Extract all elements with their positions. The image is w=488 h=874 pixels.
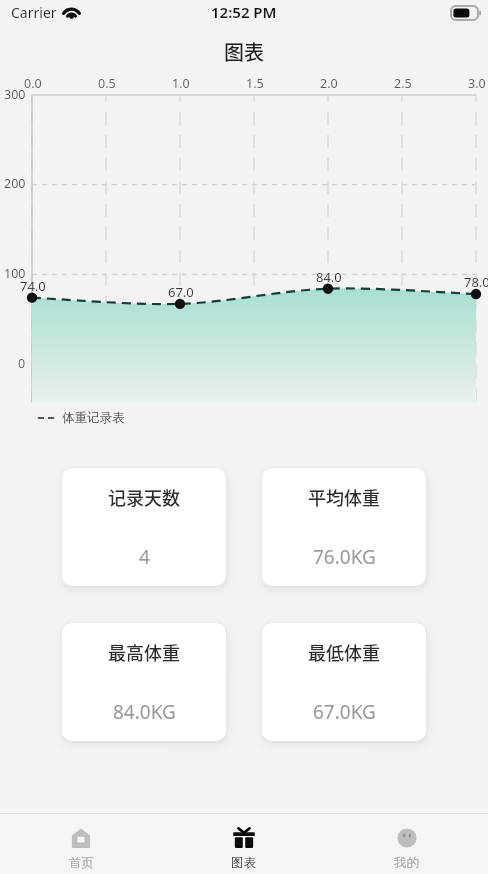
button[interactable]: 记录天数 (62, 468, 226, 586)
staticText: 67.0KG (313, 699, 376, 725)
button[interactable]: 最低体重 (262, 623, 426, 741)
staticText: 最低体重 (308, 639, 380, 665)
staticText: Carrier (11, 3, 57, 22)
button[interactable]: 平均体重 (262, 468, 426, 586)
staticText: 平均体重 (308, 484, 380, 510)
button[interactable]: 我的 (325, 814, 488, 874)
button[interactable]: 图表 (162, 814, 325, 874)
staticText: 12:52 PM (211, 2, 277, 22)
staticText: 4 (139, 544, 150, 570)
staticText: 76.0KG (313, 544, 376, 570)
staticText: 图表 (231, 855, 256, 871)
staticText: 首页 (69, 855, 94, 871)
staticText: 最高体重 (108, 639, 180, 665)
staticText: 图表 (224, 37, 264, 66)
staticText: 84.0KG (113, 699, 176, 725)
staticText: 记录天数 (108, 484, 180, 510)
button[interactable]: 首页 (0, 814, 162, 874)
button[interactable]: 最高体重 (62, 623, 226, 741)
staticText: 我的 (394, 855, 419, 871)
